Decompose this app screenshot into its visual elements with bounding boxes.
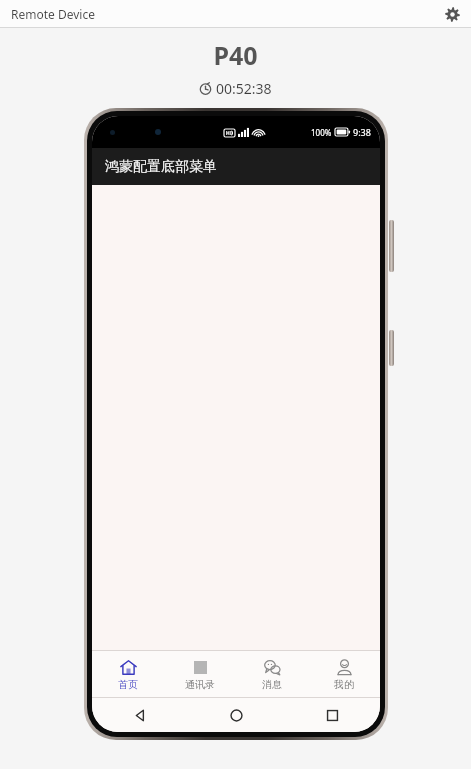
staticText: P40 [213,38,258,72]
staticText: 00:52:38 [216,79,272,98]
button[interactable]: 消息 [236,651,308,697]
staticText: 消息 [262,678,282,691]
button[interactable]: 通讯录 [164,651,236,697]
staticText: 9:38 [353,126,371,138]
button[interactable]: Recents [284,698,380,732]
button[interactable]: Back [92,698,188,732]
button[interactable]: Settings [441,3,463,25]
staticText: 我的 [334,678,354,691]
button[interactable]: 我的 [308,651,380,697]
staticText: 鸿蒙配置底部菜单 [105,158,217,176]
staticText: Remote Device [11,6,95,22]
button[interactable]: 首页 [92,651,164,697]
staticText: 通讯录 [185,678,215,691]
staticText: 首页 [118,678,138,691]
button[interactable]: Home [188,698,284,732]
staticText: 100% [311,127,332,138]
